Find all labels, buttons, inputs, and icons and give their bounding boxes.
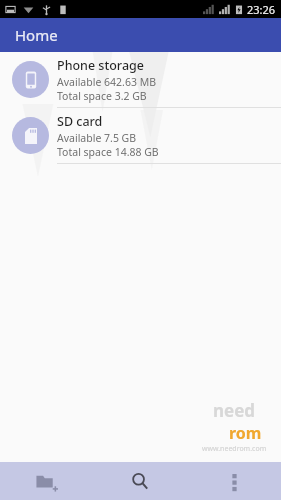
staticText: SD card bbox=[57, 113, 103, 130]
staticText: Total space 3.2 GB bbox=[57, 89, 147, 103]
staticText: Available 7.5 GB bbox=[57, 131, 137, 145]
button[interactable]: Phone storage bbox=[0, 52, 281, 107]
staticText: www.needrom.com bbox=[202, 444, 267, 454]
button[interactable]: Search bbox=[93, 462, 187, 500]
staticText: 23:26 bbox=[247, 2, 276, 17]
staticText: need bbox=[213, 399, 256, 422]
button[interactable]: More options bbox=[187, 462, 281, 500]
staticText: Phone storage bbox=[57, 57, 144, 74]
button[interactable]: New folder bbox=[0, 462, 93, 500]
staticText: Home bbox=[15, 25, 58, 45]
staticText: Available 642.63 MB bbox=[57, 75, 156, 89]
staticText: rom bbox=[229, 422, 262, 444]
button[interactable]: SD card bbox=[0, 108, 281, 163]
staticText: Total space 14.88 GB bbox=[57, 145, 159, 159]
